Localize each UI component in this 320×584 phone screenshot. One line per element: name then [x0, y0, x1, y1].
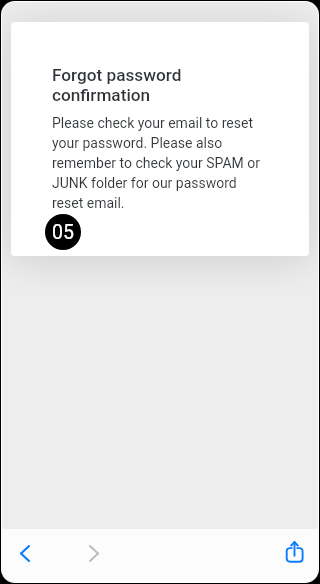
- button[interactable]: Share: [277, 534, 313, 570]
- staticText: Please check your email to reset your pa…: [52, 115, 267, 211]
- button[interactable]: Forward: [76, 535, 112, 571]
- button[interactable]: Back: [7, 535, 43, 571]
- staticText: 05: [52, 221, 74, 244]
- staticText: Forgot password confirmation: [52, 65, 267, 105]
